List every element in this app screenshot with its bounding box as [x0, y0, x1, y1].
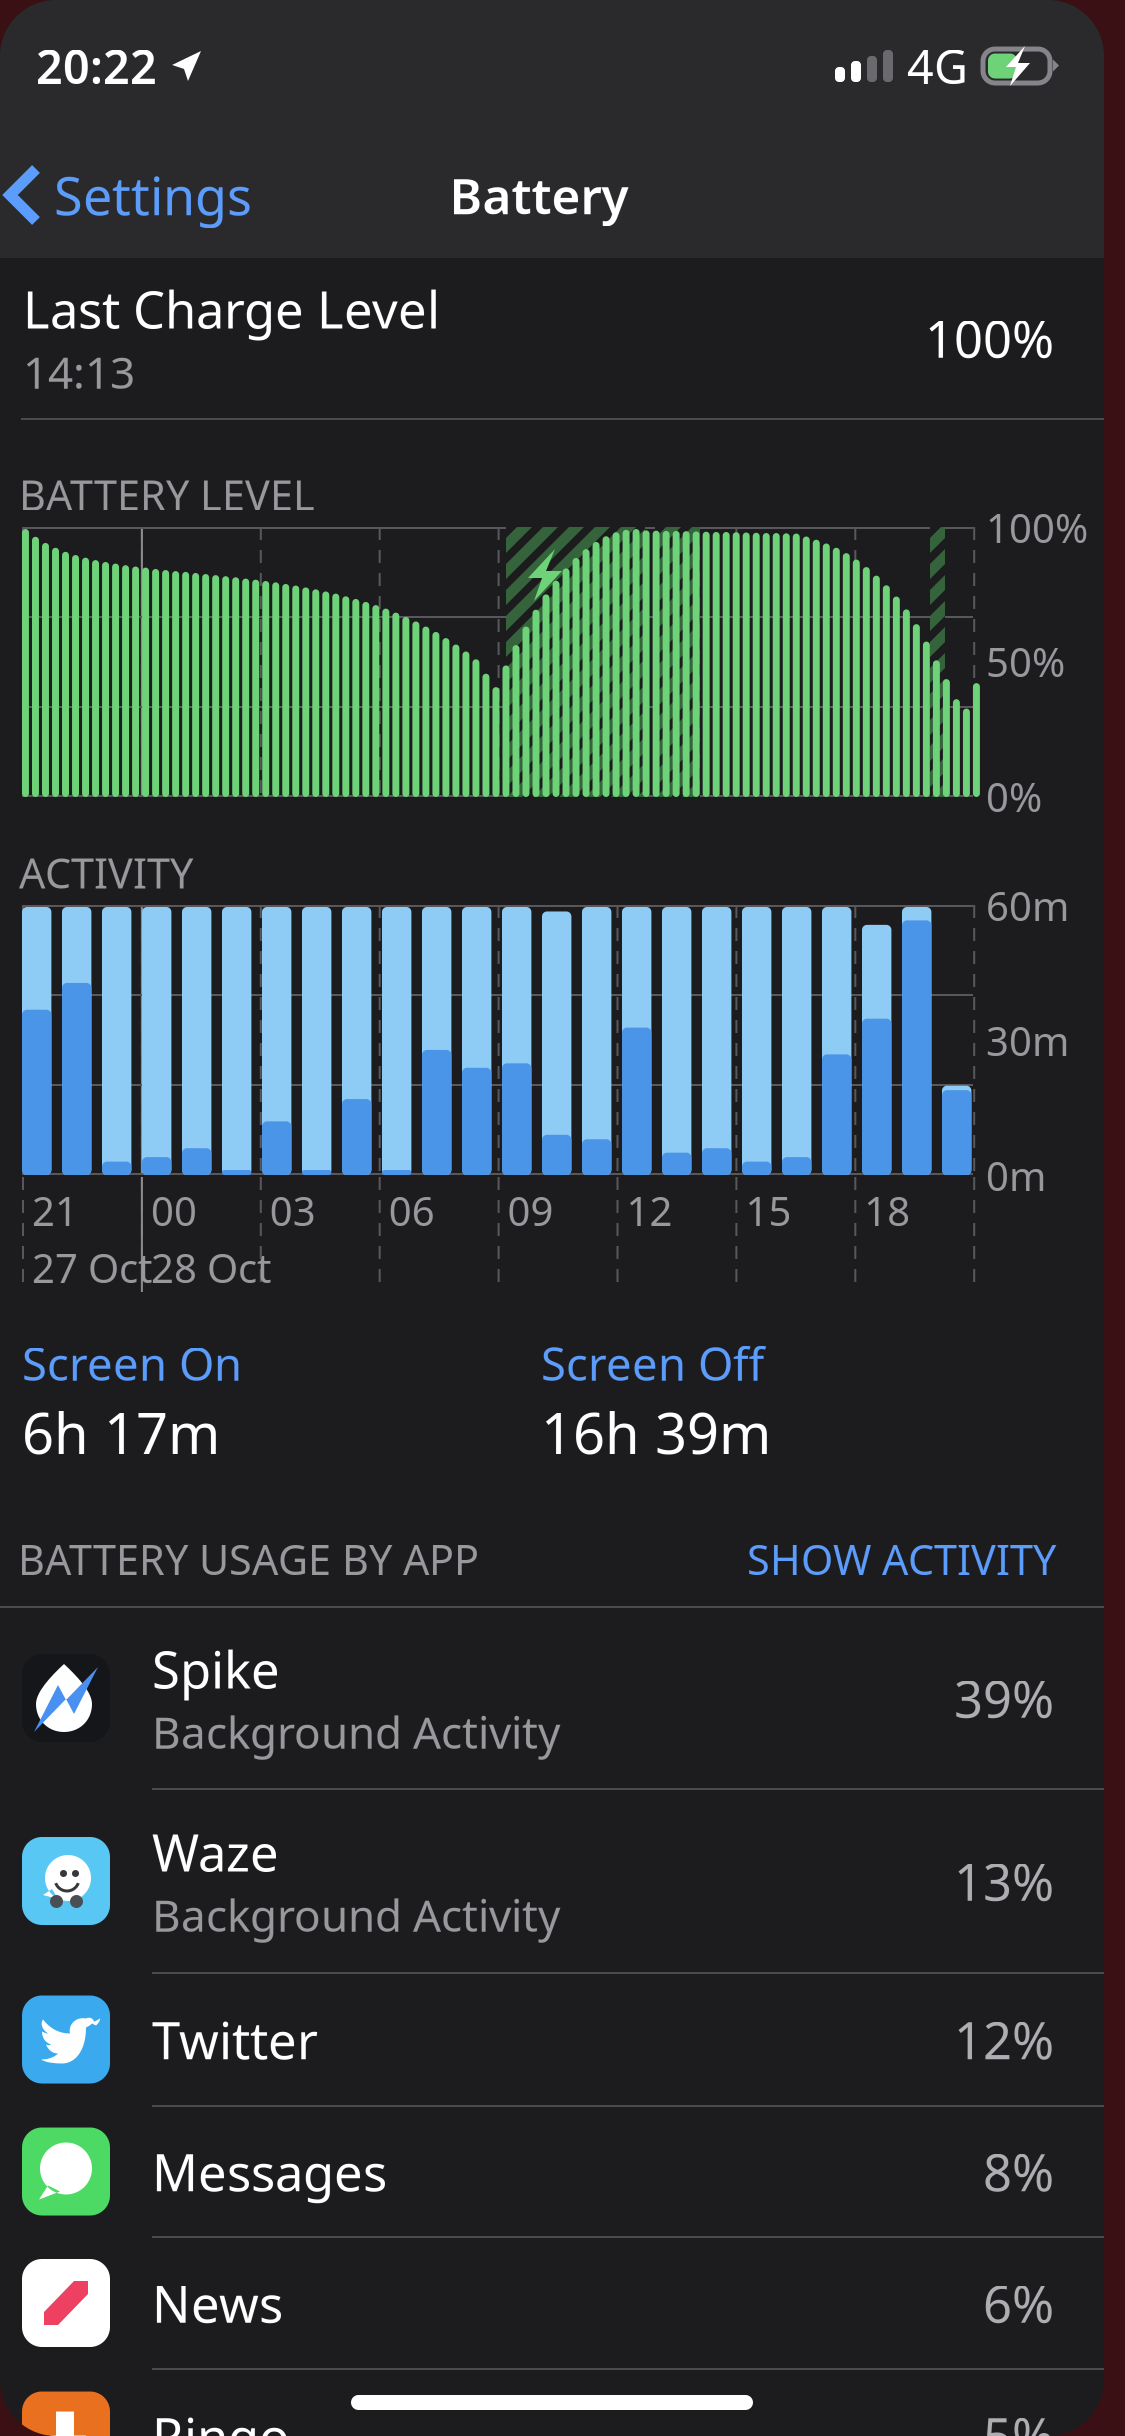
- staticText: Messages: [152, 2138, 387, 2205]
- staticText: 09: [508, 1184, 554, 1237]
- staticText: 0%: [986, 770, 1042, 823]
- staticText: Last Charge Level: [23, 275, 440, 342]
- staticText: BATTERY USAGE BY APP: [18, 1532, 479, 1586]
- staticText: 30m: [986, 1014, 1069, 1067]
- button[interactable]: Messages: [0, 2107, 1104, 2236]
- staticText: 60m: [986, 879, 1069, 932]
- staticText: 06: [389, 1184, 435, 1237]
- staticText: SHOW ACTIVITY: [747, 1532, 1056, 1586]
- staticText: 16h 39m: [541, 1395, 771, 1470]
- staticText: Waze: [152, 1818, 279, 1885]
- staticText: 12: [626, 1184, 672, 1237]
- staticText: 14:13: [23, 342, 135, 401]
- button[interactable]: SHOW ACTIVITY: [747, 1532, 1056, 1586]
- staticText: 27 Oct: [32, 1241, 152, 1294]
- staticText: 28 Oct: [151, 1241, 271, 1294]
- staticText: 8%: [983, 2138, 1054, 2205]
- staticText: 20:22: [36, 35, 157, 97]
- staticText: 4G: [907, 35, 968, 97]
- staticText: 18: [864, 1184, 910, 1237]
- staticText: 03: [270, 1184, 316, 1237]
- staticText: 39%: [954, 1664, 1054, 1732]
- button[interactable]: Settings: [0, 132, 252, 258]
- staticText: BATTERY LEVEL: [19, 467, 315, 522]
- staticText: 5%: [983, 2402, 1054, 2436]
- staticText: Twitter: [152, 2006, 318, 2073]
- staticText: 12%: [954, 2006, 1054, 2073]
- staticText: 6%: [983, 2269, 1054, 2337]
- staticText: Ringo: [152, 2402, 290, 2436]
- staticText: 100%: [986, 501, 1088, 554]
- staticText: 13%: [954, 1847, 1054, 1915]
- staticText: Battery: [449, 162, 628, 228]
- staticText: 6h 17m: [22, 1395, 220, 1470]
- button[interactable]: Twitter: [0, 1974, 1104, 2105]
- staticText: Screen Off: [541, 1333, 764, 1393]
- button[interactable]: Ringo: [0, 2370, 1104, 2436]
- staticText: 00: [151, 1184, 197, 1237]
- staticText: Background Activity: [152, 1885, 560, 1944]
- staticText: Screen On: [22, 1333, 242, 1393]
- staticText: 21: [32, 1184, 78, 1237]
- staticText: Spike: [152, 1635, 280, 1702]
- staticText: 0m: [986, 1149, 1046, 1202]
- button[interactable]: News: [0, 2238, 1104, 2368]
- button[interactable]: Waze: [0, 1790, 1104, 1972]
- staticText: 50%: [986, 635, 1065, 688]
- staticText: 15: [745, 1184, 791, 1237]
- staticText: News: [152, 2269, 283, 2337]
- staticText: ACTIVITY: [19, 845, 193, 900]
- staticText: 100%: [925, 304, 1054, 372]
- staticText: Background Activity: [152, 1702, 560, 1761]
- staticText: Settings: [54, 160, 252, 230]
- button[interactable]: Spike: [0, 1608, 1104, 1788]
